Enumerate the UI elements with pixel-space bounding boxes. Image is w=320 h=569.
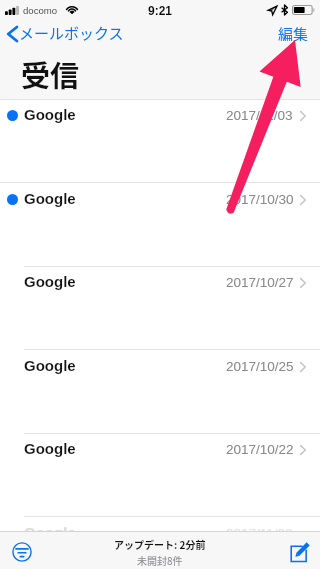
staticText: 未開封8件 [137, 553, 183, 567]
staticText: 2017/10/22 [226, 442, 294, 457]
staticText: Google [24, 106, 76, 123]
button[interactable]: Google [0, 517, 320, 569]
button[interactable]: Google [0, 350, 320, 433]
staticText: Google [24, 273, 76, 290]
button[interactable]: 編集 [266, 20, 320, 44]
staticText: 2017/10/27 [226, 275, 294, 290]
button[interactable]: Filter [8, 538, 36, 566]
staticText: Google [24, 440, 76, 457]
staticText: 9:21 [148, 4, 173, 17]
staticText: Google [24, 524, 76, 541]
staticText: docomo [23, 5, 58, 16]
staticText: 2017/10/30 [226, 192, 294, 207]
staticText: 2017/10/25 [226, 359, 294, 374]
staticText: 2017/11/03 [226, 108, 293, 123]
button[interactable]: メールボックス [0, 20, 132, 44]
staticText: Google [24, 190, 76, 207]
staticText: Google [24, 357, 76, 374]
button[interactable]: Google [0, 433, 320, 516]
staticText: アップデート: 2分前 [114, 537, 206, 551]
staticText: 2017/11/03 [226, 526, 293, 541]
staticText: 編集 [278, 23, 309, 41]
button[interactable]: Compose [286, 538, 314, 566]
staticText: メールボックス [19, 22, 124, 42]
button[interactable]: Google [0, 266, 320, 349]
button[interactable]: Google [0, 99, 320, 182]
button[interactable]: Google [0, 183, 320, 266]
staticText: 受信 [21, 53, 80, 95]
